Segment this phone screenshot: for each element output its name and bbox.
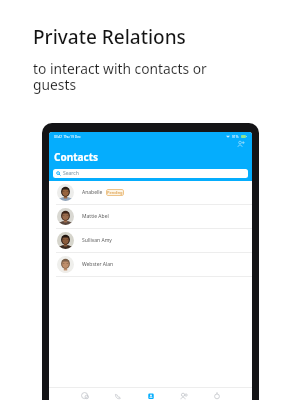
button[interactable]: Settings xyxy=(200,388,233,400)
button[interactable]: Search xyxy=(53,169,248,178)
staticText: Sullivan Amy xyxy=(82,237,112,244)
button[interactable]: Contacts xyxy=(134,388,167,400)
button[interactable]: Sullivan Amy xyxy=(49,229,252,253)
staticText: Contacts xyxy=(54,150,99,164)
staticText: Mattie Abel xyxy=(82,213,109,220)
button[interactable]: Chats xyxy=(68,388,101,400)
staticText: Search xyxy=(63,170,79,177)
staticText: Private Relations xyxy=(33,24,186,50)
staticText: Pending xyxy=(107,190,123,195)
staticText: to interact with contacts or guests xyxy=(33,59,207,94)
button[interactable]: Add contact xyxy=(233,136,249,152)
staticText: Webster Alan xyxy=(82,261,114,268)
button[interactable]: Webster Alan xyxy=(49,253,252,277)
button[interactable]: Calls xyxy=(101,388,134,400)
staticText: 91% xyxy=(232,135,239,139)
button[interactable]: Mattie Abel xyxy=(49,205,252,229)
staticText: Anabelle xyxy=(82,189,103,196)
staticText: 03:47 Thu 19 Dec xyxy=(54,135,81,139)
button[interactable]: Groups xyxy=(167,388,200,400)
button[interactable]: Anabelle xyxy=(49,181,252,205)
